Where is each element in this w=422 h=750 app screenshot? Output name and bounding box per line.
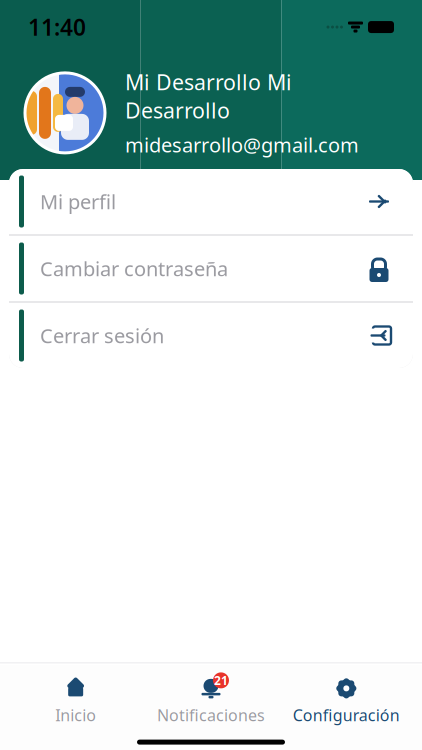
button[interactable]: Cerrar sesión xyxy=(9,303,413,368)
staticText: 11:40 xyxy=(28,12,86,42)
button[interactable]: Configuración xyxy=(279,671,414,732)
staticText: Mi Desarrollo Mi Desarrollo xyxy=(125,68,292,124)
staticText: Configuración xyxy=(293,704,400,726)
staticText: Mi perfil xyxy=(40,188,116,215)
staticText: Cerrar sesión xyxy=(40,322,164,349)
staticText: midesarrollo@gmail.com xyxy=(125,131,359,158)
staticText: Inicio xyxy=(55,704,96,726)
staticText: Notificaciones xyxy=(157,704,265,726)
button[interactable]: Inicio xyxy=(8,671,143,732)
staticText: 21 xyxy=(214,672,228,688)
button[interactable]: Mi perfil xyxy=(9,169,413,234)
button[interactable]: 21 xyxy=(143,671,279,732)
button[interactable]: Cambiar contraseña xyxy=(9,236,413,301)
staticText: Cambiar contraseña xyxy=(40,255,228,282)
